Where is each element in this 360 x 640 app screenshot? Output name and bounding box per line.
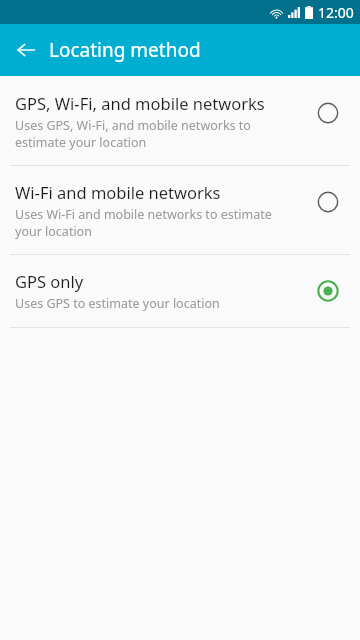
staticText: Wi-Fi and mobile networks: [15, 181, 221, 203]
button[interactable]: Not selected: [314, 99, 342, 127]
staticText: Uses GPS to estimate your location: [15, 295, 220, 312]
button[interactable]: GPS only: [0, 255, 360, 327]
staticText: Locating method: [49, 37, 201, 63]
staticText: Uses Wi-Fi and mobile networks to estima…: [15, 206, 300, 239]
button[interactable]: Navigate up: [8, 32, 44, 68]
button[interactable]: Selected: [314, 277, 342, 305]
staticText: 12:00: [318, 3, 354, 22]
button[interactable]: Wi-Fi and mobile networks: [0, 166, 360, 254]
button[interactable]: GPS, Wi-Fi, and mobile networks: [0, 77, 360, 165]
staticText: GPS, Wi-Fi, and mobile networks: [15, 92, 265, 114]
staticText: Uses GPS, Wi-Fi, and mobile networks to …: [15, 117, 300, 150]
staticText: GPS only: [15, 270, 84, 292]
button[interactable]: Not selected: [314, 188, 342, 216]
